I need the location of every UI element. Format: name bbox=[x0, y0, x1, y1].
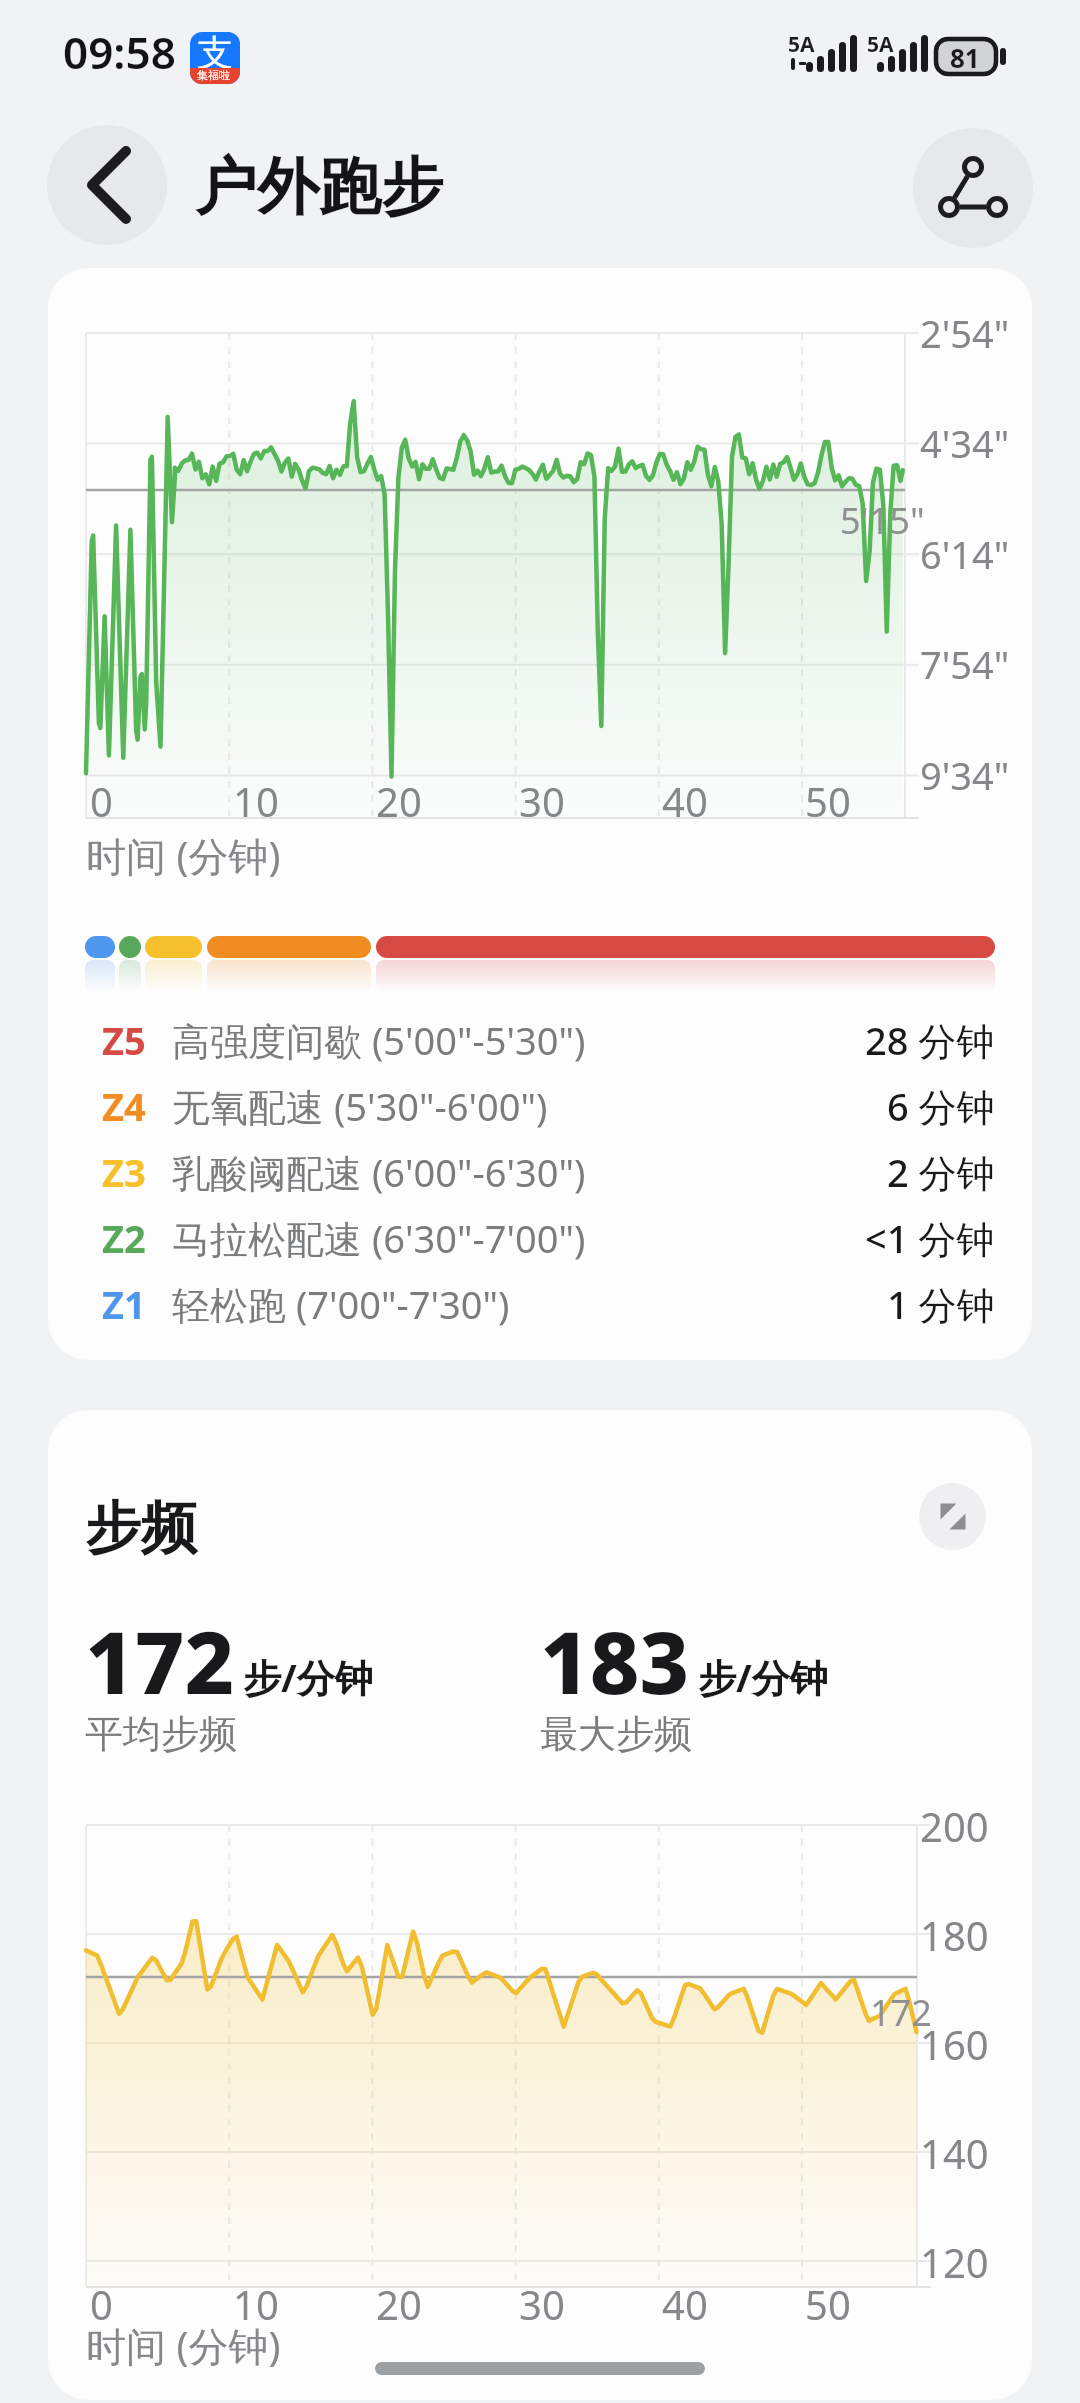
staticText: 140 bbox=[920, 2126, 989, 2180]
staticText: 2'54" bbox=[920, 307, 1010, 359]
staticText: 30 bbox=[519, 774, 565, 828]
button[interactable] bbox=[913, 128, 1033, 248]
staticText: 5'15" bbox=[840, 496, 925, 545]
staticText: 时间 (分钟) bbox=[86, 2318, 281, 2373]
staticText: 30 bbox=[519, 2277, 565, 2331]
staticText: 轻松跑 (7'00"-7'30") bbox=[172, 1278, 510, 1330]
staticText: 160 bbox=[920, 2017, 989, 2071]
staticText: 马拉松配速 (6'30"-7'00") bbox=[172, 1212, 586, 1264]
staticText: 时间 (分钟) bbox=[86, 828, 281, 883]
staticText: 0 bbox=[90, 774, 113, 828]
staticText: 5A bbox=[788, 30, 815, 59]
staticText: 0 bbox=[90, 2277, 113, 2331]
staticText: 120 bbox=[920, 2235, 989, 2289]
staticText: 7'54" bbox=[920, 638, 1010, 690]
staticText: 高强度间歇 (5'00"-5'30") bbox=[172, 1014, 586, 1066]
staticText: 50 bbox=[805, 2277, 851, 2331]
staticText: 28 分钟 bbox=[865, 1014, 995, 1066]
staticText: 步频 bbox=[85, 1493, 197, 1564]
button[interactable] bbox=[47, 125, 167, 245]
staticText: 172 bbox=[870, 1988, 932, 2037]
staticText: 步/分钟 bbox=[698, 1651, 828, 1703]
staticText: 172 bbox=[85, 1602, 235, 1719]
staticText: <1 分钟 bbox=[865, 1212, 995, 1264]
staticText: 支 bbox=[197, 32, 233, 75]
staticText: 无氧配速 (5'30"-6'00") bbox=[172, 1080, 548, 1132]
staticText: 40 bbox=[662, 774, 708, 828]
staticText: 6'14" bbox=[920, 528, 1010, 580]
staticText: Z2 bbox=[102, 1212, 146, 1264]
staticText: 集福啦 bbox=[197, 68, 230, 82]
staticText: 200 bbox=[920, 1799, 989, 1853]
staticText: Z5 bbox=[102, 1014, 146, 1066]
staticText: 10 bbox=[233, 774, 279, 828]
staticText: 6 分钟 bbox=[887, 1080, 995, 1132]
staticText: Z3 bbox=[102, 1146, 146, 1198]
staticText: 平均步频 bbox=[85, 1710, 237, 1758]
button[interactable] bbox=[919, 1483, 986, 1550]
staticText: 户外跑步 bbox=[195, 148, 443, 226]
staticText: 5A bbox=[867, 30, 894, 59]
staticText: 乳酸阈配速 (6'00"-6'30") bbox=[172, 1146, 586, 1198]
staticText: 步/分钟 bbox=[243, 1651, 373, 1703]
staticText: Z1 bbox=[102, 1278, 146, 1330]
staticText: 最大步频 bbox=[540, 1710, 692, 1758]
staticText: 20 bbox=[376, 774, 422, 828]
staticText: 2 分钟 bbox=[887, 1146, 995, 1198]
staticText: Z4 bbox=[102, 1080, 146, 1132]
staticText: 40 bbox=[662, 2277, 708, 2331]
staticText: 20 bbox=[376, 2277, 422, 2331]
staticText: 1 分钟 bbox=[887, 1278, 995, 1330]
staticText: 50 bbox=[805, 774, 851, 828]
staticText: 10 bbox=[233, 2277, 279, 2331]
staticText: 183 bbox=[540, 1602, 690, 1719]
staticText: 9'34" bbox=[920, 749, 1010, 801]
staticText: 4'34" bbox=[920, 417, 1010, 469]
staticText: 81 bbox=[950, 40, 980, 75]
staticText: 09:58 bbox=[63, 22, 176, 82]
staticText: 180 bbox=[920, 1908, 989, 1962]
